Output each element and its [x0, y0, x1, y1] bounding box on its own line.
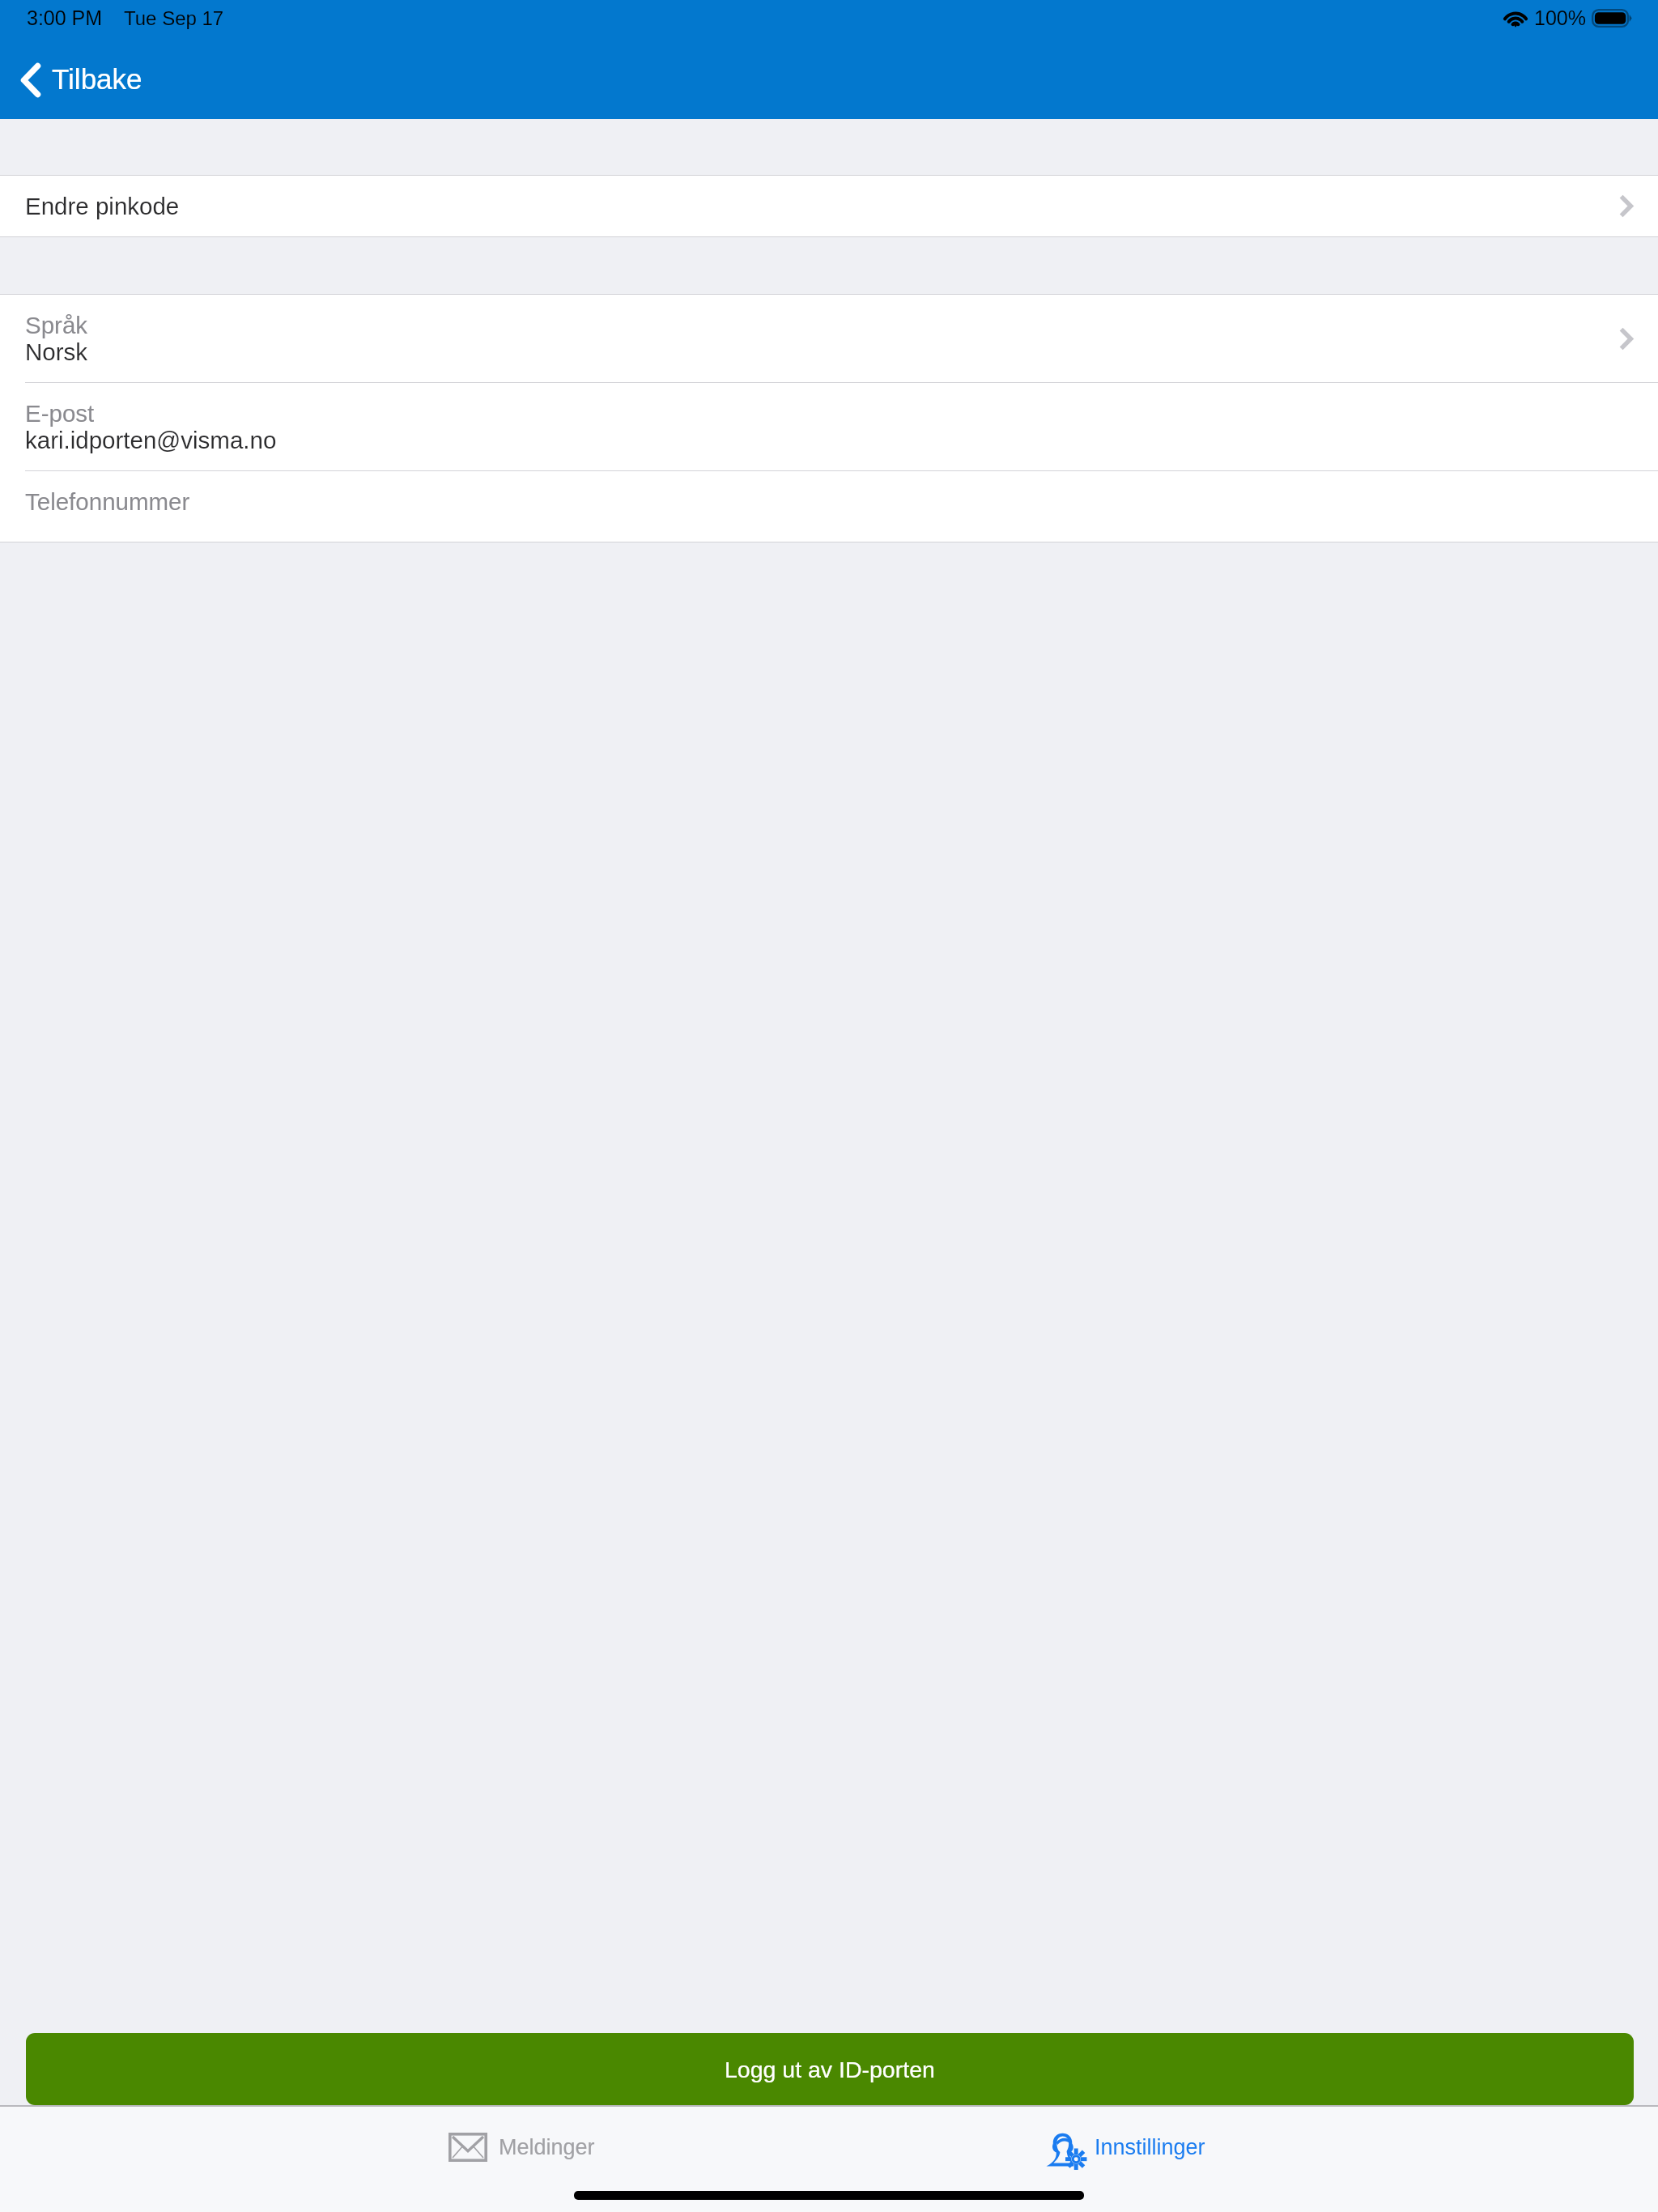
button[interactable]: Endre pinkode — [0, 176, 1658, 236]
button[interactable]: Logg ut av ID-porten — [26, 2033, 1634, 2105]
staticText: Tilbake — [52, 63, 142, 95]
staticText: kari.idporten@visma.no — [25, 427, 277, 453]
other: Meldinger — [449, 2133, 487, 2162]
button[interactable]: Meldinger — [220, 2107, 823, 2188]
staticText: Innstillinger — [1095, 2135, 1205, 2159]
staticText: Norsk — [25, 338, 88, 365]
other: Innstillinger — [1044, 2128, 1084, 2167]
button[interactable]: E-post — [0, 383, 1658, 470]
button[interactable]: Språk — [0, 295, 1658, 382]
staticText: Språk — [25, 312, 88, 338]
button[interactable]: Innstillinger — [823, 2107, 1426, 2188]
staticText: 100% — [1534, 6, 1586, 29]
button[interactable]: Telefonnummer — [0, 471, 1658, 542]
staticText: 3:00 PM — [27, 6, 103, 29]
staticText: Tue Sep 17 — [124, 7, 224, 29]
staticText: Endre pinkode — [25, 193, 180, 219]
staticText: E-post — [25, 400, 95, 427]
staticText: Logg ut av ID-porten — [725, 2057, 935, 2082]
staticText: Meldinger — [499, 2135, 595, 2159]
button[interactable]: Tilbake — [0, 47, 164, 119]
staticText: Telefonnummer — [25, 488, 190, 515]
